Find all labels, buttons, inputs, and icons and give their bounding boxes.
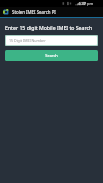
button[interactable]: 15 Digit IMEI Number [6, 36, 97, 45]
staticText: 15 Digit IMEI Number [9, 38, 46, 43]
staticText: Search [45, 53, 58, 58]
staticText: Stolen IMEI Search PI [12, 9, 56, 15]
other: App icon [3, 9, 9, 15]
button[interactable]: App icon [0, 7, 103, 17]
button[interactable]: Search [5, 50, 98, 61]
staticText: 4:27 pm [78, 1, 94, 6]
staticText: Enter 15 digit Mobile IMEI to Search [5, 24, 93, 31]
